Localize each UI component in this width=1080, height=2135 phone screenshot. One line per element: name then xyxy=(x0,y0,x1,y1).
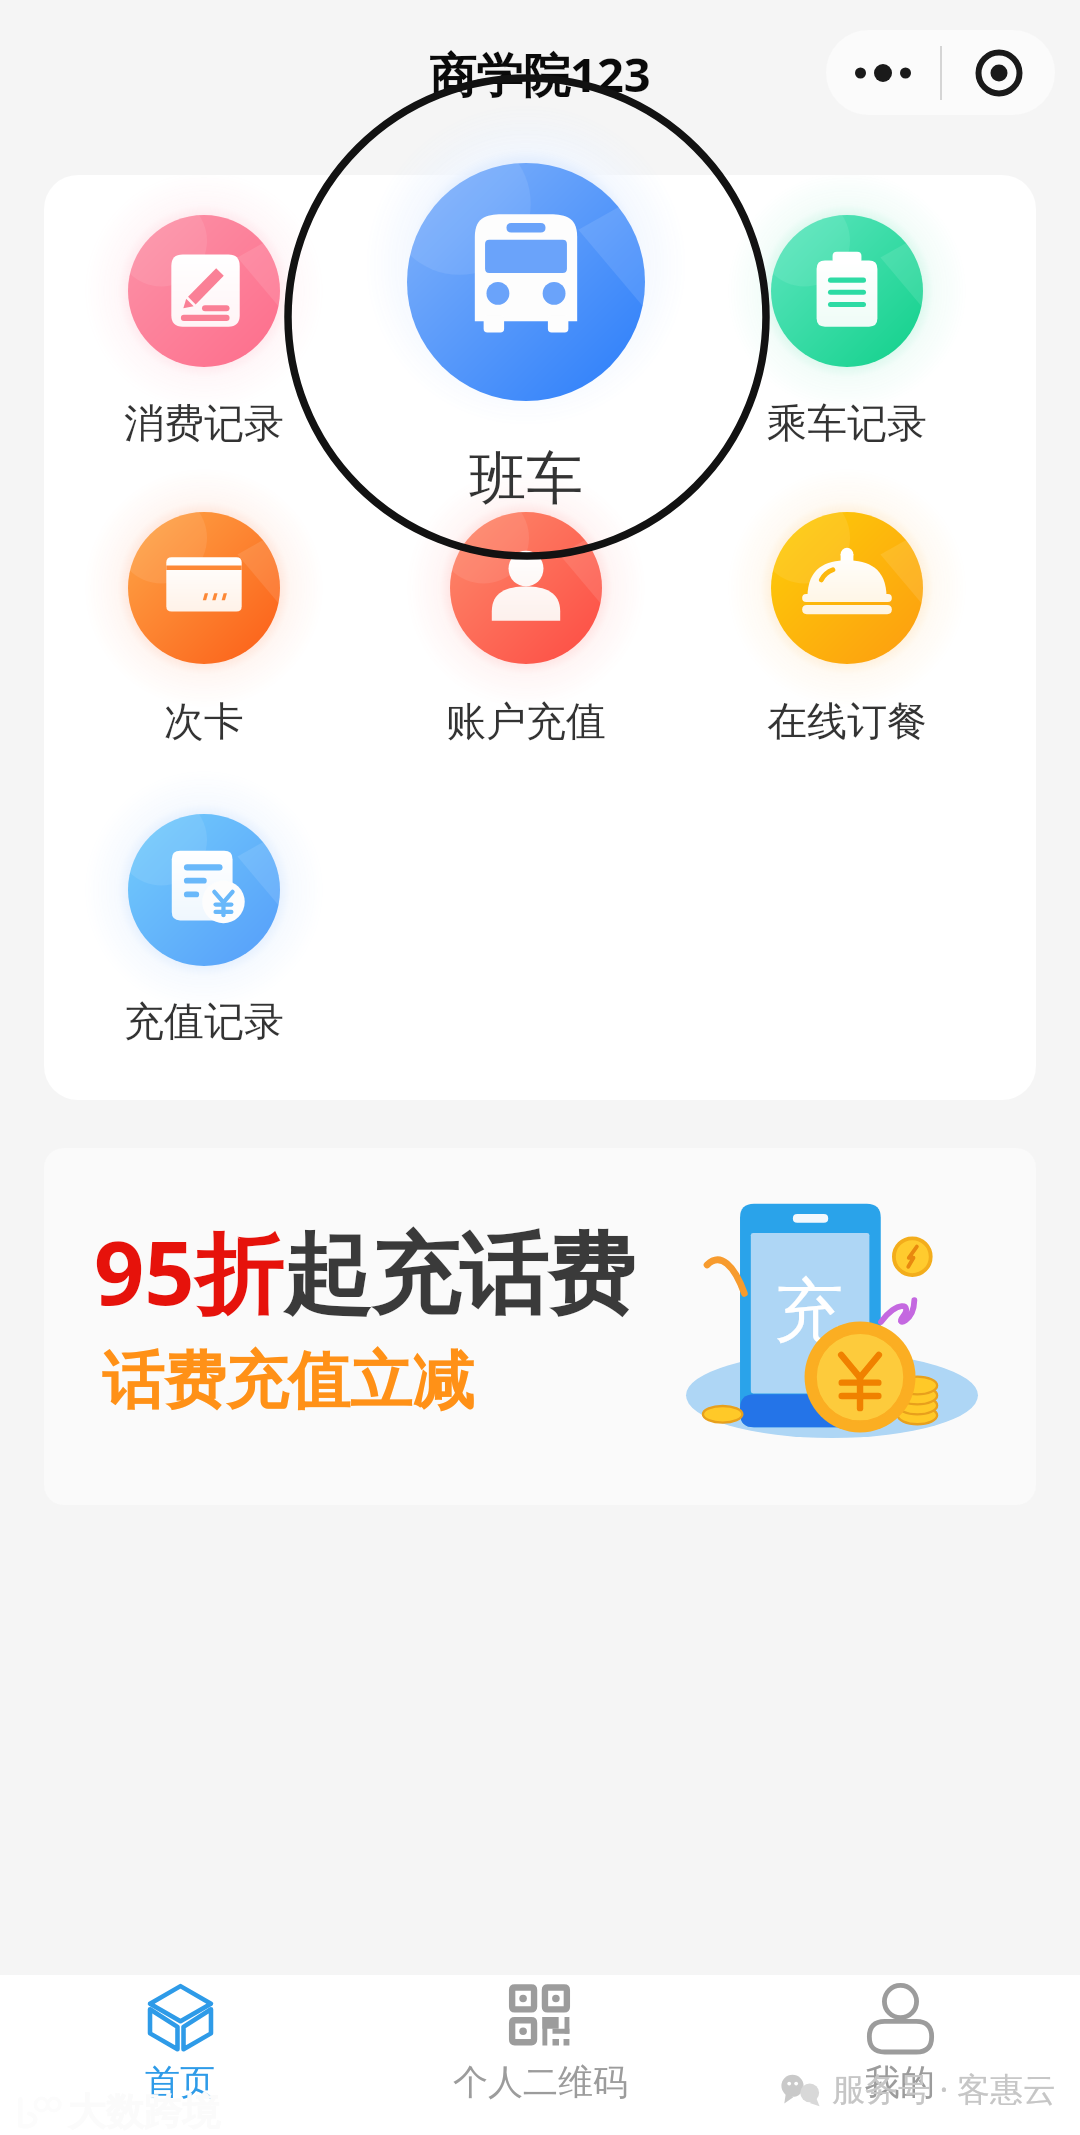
staticText: 服务号 · 客惠云 xyxy=(832,2066,1057,2111)
button[interactable]: Close mini program xyxy=(942,30,1055,115)
staticText: 消费记录 xyxy=(124,398,284,448)
button[interactable]: 账户充值 xyxy=(365,512,687,758)
button[interactable]: 在线订餐 xyxy=(686,512,1008,758)
staticText: 班车 xyxy=(469,443,583,515)
staticText: 大数跨境 xyxy=(68,2088,220,2135)
staticText: 充值记录 xyxy=(124,996,284,1046)
button[interactable]: 我的 xyxy=(720,1975,1080,2104)
button[interactable]: More options xyxy=(826,30,940,115)
staticText: 95折 xyxy=(94,1211,283,1331)
staticText: 我的 xyxy=(865,2060,935,2104)
button[interactable]: 次卡 xyxy=(44,512,365,758)
staticText: 次卡 xyxy=(164,696,244,746)
staticText: 个人二维码 xyxy=(453,2060,628,2104)
button[interactable]: 首页 xyxy=(0,1975,360,2104)
button[interactable]: 消费记录 xyxy=(44,215,365,460)
button[interactable]: 95折 xyxy=(44,1148,1036,1505)
button[interactable]: 充值记录 xyxy=(44,814,365,1058)
staticText: 话费充值立减 xyxy=(102,1342,474,1420)
staticText: 起充话费 xyxy=(283,1220,635,1331)
button[interactable]: 个人二维码 xyxy=(360,1975,720,2104)
staticText: 首页 xyxy=(145,2060,215,2104)
button[interactable]: 乘车记录 xyxy=(686,215,1008,460)
staticText: 在线订餐 xyxy=(767,696,927,746)
staticText: 账户充值 xyxy=(446,696,606,746)
staticText: 充 xyxy=(774,1268,844,1356)
button[interactable]: 班车 xyxy=(365,163,687,505)
staticText: 商学院123 xyxy=(429,42,651,106)
staticText: 乘车记录 xyxy=(767,398,927,448)
